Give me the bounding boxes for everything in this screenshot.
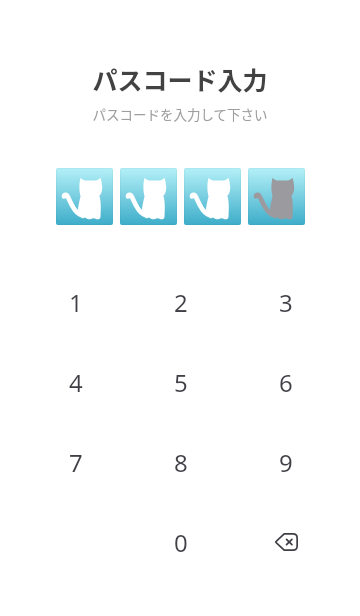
staticText: 0 xyxy=(174,526,188,559)
staticText: 2 xyxy=(174,286,188,319)
button[interactable]: 6 xyxy=(233,342,338,422)
staticText: 4 xyxy=(69,366,83,399)
button[interactable]: 8 xyxy=(128,422,233,502)
staticText: 5 xyxy=(174,366,188,399)
button[interactable]: 7 xyxy=(23,422,128,502)
staticText: パスコード入力 xyxy=(92,61,268,97)
staticText: パスコードを入力して下さい xyxy=(92,104,268,124)
staticText: 9 xyxy=(279,446,293,479)
staticText: 7 xyxy=(69,446,83,479)
button[interactable]: 5 xyxy=(128,342,233,422)
button[interactable]: 4 xyxy=(23,342,128,422)
button[interactable]: 9 xyxy=(233,422,338,502)
button[interactable]: Backspace xyxy=(233,502,338,582)
staticText: 3 xyxy=(279,286,293,319)
button[interactable]: 1 xyxy=(23,262,128,342)
staticText: 8 xyxy=(174,446,188,479)
button[interactable]: 3 xyxy=(233,262,338,342)
staticText: 1 xyxy=(69,286,83,319)
staticText: 6 xyxy=(279,366,293,399)
button[interactable]: 0 xyxy=(128,502,233,582)
button[interactable]: 2 xyxy=(128,262,233,342)
